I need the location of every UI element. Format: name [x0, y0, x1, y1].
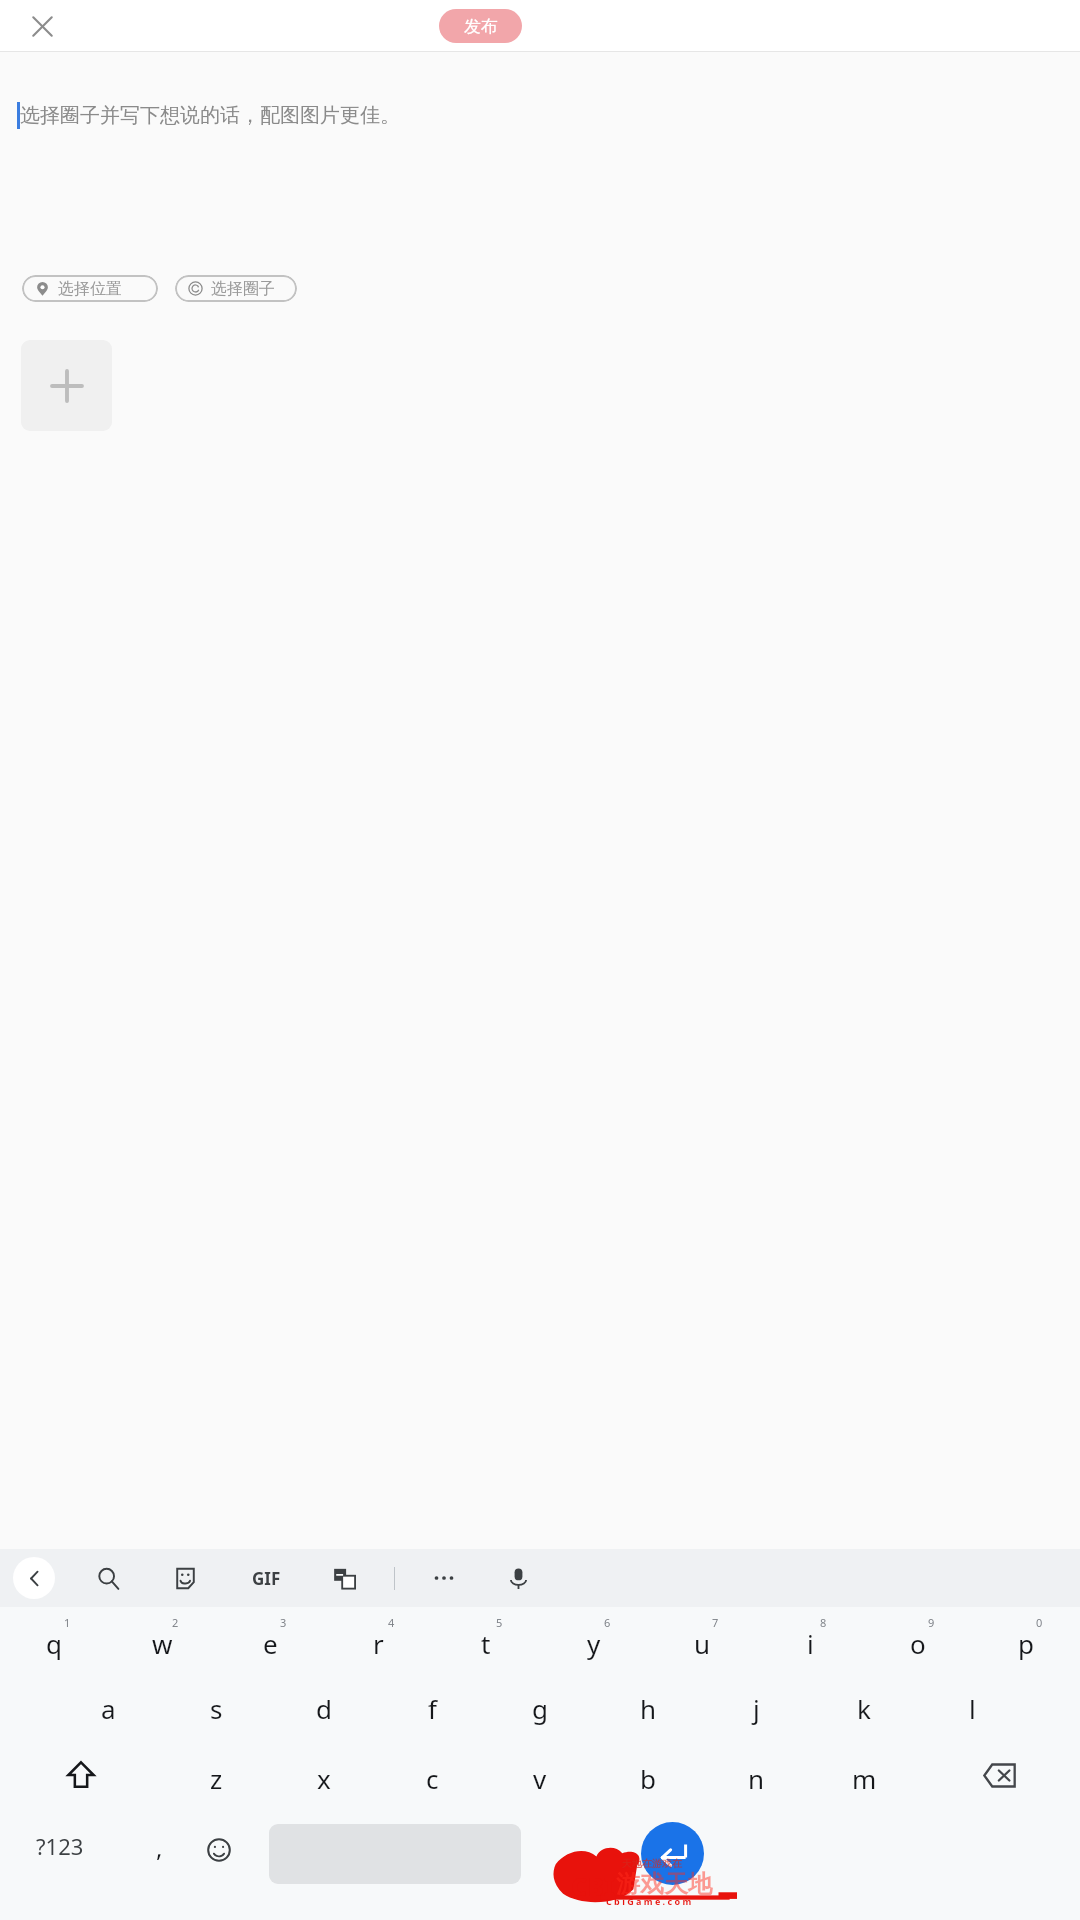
- staticText: 选择圈子: [211, 279, 275, 299]
- button[interactable]: Search: [86, 1556, 130, 1600]
- button[interactable]: f: [378, 1681, 486, 1751]
- staticText: e: [263, 1626, 278, 1661]
- button[interactable]: n: [702, 1751, 810, 1821]
- button[interactable]: ,: [124, 1821, 194, 1891]
- button[interactable]: 发布: [439, 9, 522, 43]
- staticText: 游戏天地: [616, 1869, 712, 1899]
- button[interactable]: Emoji: [196, 1827, 242, 1873]
- button[interactable]: m: [810, 1751, 918, 1821]
- button[interactable]: a: [54, 1681, 162, 1751]
- staticText: b: [640, 1761, 656, 1796]
- button[interactable]: More options: [421, 1555, 467, 1601]
- button[interactable]: h: [594, 1681, 702, 1751]
- button[interactable]: 8: [756, 1611, 864, 1681]
- button[interactable]: k: [810, 1681, 918, 1751]
- button[interactable]: x: [270, 1751, 378, 1821]
- button[interactable]: l: [918, 1681, 1026, 1751]
- button[interactable]: j: [702, 1681, 810, 1751]
- staticText: h: [640, 1691, 657, 1726]
- button[interactable]: Shift: [0, 1751, 162, 1821]
- staticText: v: [533, 1761, 547, 1796]
- staticText: o: [910, 1626, 926, 1661]
- staticText: m: [852, 1761, 877, 1796]
- staticText: z: [210, 1761, 223, 1796]
- button[interactable]: Translate: [322, 1556, 366, 1600]
- staticText: 0: [1036, 1615, 1043, 1630]
- button[interactable]: b: [594, 1751, 702, 1821]
- staticText: ?123: [36, 1831, 84, 1861]
- staticText: y: [587, 1626, 601, 1661]
- staticText: ,: [156, 1831, 163, 1864]
- button[interactable]: Close: [14, 0, 70, 52]
- staticText: 6: [604, 1615, 611, 1630]
- button[interactable]: 0: [972, 1611, 1080, 1681]
- staticText: 9: [928, 1615, 935, 1630]
- staticText: 7: [712, 1615, 719, 1630]
- staticText: a: [101, 1691, 116, 1726]
- staticText: 选择位置: [58, 279, 122, 299]
- staticText: n: [748, 1761, 765, 1796]
- staticText: 发布: [464, 16, 498, 37]
- button[interactable]: c: [378, 1751, 486, 1821]
- staticText: 8: [820, 1615, 827, 1630]
- staticText: s: [210, 1691, 223, 1726]
- button[interactable]: s: [162, 1681, 270, 1751]
- staticText: w: [152, 1626, 173, 1661]
- staticText: d: [316, 1691, 332, 1726]
- staticText: 3: [280, 1615, 287, 1630]
- button[interactable]: 1: [0, 1611, 108, 1681]
- button[interactable]: 6: [540, 1611, 648, 1681]
- staticText: x: [317, 1761, 331, 1796]
- staticText: u: [694, 1626, 711, 1661]
- button[interactable]: Back: [13, 1557, 55, 1599]
- button[interactable]: 3: [216, 1611, 324, 1681]
- button[interactable]: Add photo: [21, 340, 112, 431]
- staticText: l: [969, 1691, 976, 1726]
- staticText: 2: [172, 1615, 179, 1630]
- staticText: 1: [64, 1615, 71, 1630]
- button[interactable]: d: [270, 1681, 378, 1751]
- staticText: r: [373, 1626, 384, 1661]
- staticText: 选择圈子并写下想说的话，配图图片更佳。: [20, 103, 400, 128]
- staticText: 4: [388, 1615, 395, 1630]
- staticText: k: [857, 1691, 871, 1726]
- button[interactable]: Stickers: [163, 1556, 207, 1600]
- button[interactable]: Voice input: [496, 1556, 540, 1600]
- staticText: j: [753, 1691, 760, 1726]
- button[interactable]: v: [486, 1751, 594, 1821]
- button[interactable]: ?123: [5, 1821, 115, 1891]
- button[interactable]: z: [162, 1751, 270, 1821]
- staticText: f: [428, 1691, 437, 1726]
- staticText: 5: [496, 1615, 503, 1630]
- button[interactable]: 选择位置: [22, 275, 158, 302]
- button[interactable]: 5: [432, 1611, 540, 1681]
- button[interactable]: 4: [324, 1611, 432, 1681]
- staticText: 天地在游戏在: [622, 1857, 682, 1870]
- staticText: g: [532, 1691, 548, 1726]
- staticText: t: [481, 1626, 491, 1661]
- button[interactable]: 选择圈子: [175, 275, 297, 302]
- button[interactable]: 7: [648, 1611, 756, 1681]
- staticText: i: [807, 1626, 814, 1661]
- button[interactable]: Backspace: [918, 1751, 1080, 1821]
- button[interactable]: 2: [108, 1611, 216, 1681]
- button[interactable]: Enter: [641, 1822, 704, 1885]
- staticText: C b i G a m e . c o m: [606, 1895, 692, 1907]
- button[interactable]: g: [486, 1681, 594, 1751]
- staticText: CBI: [571, 1869, 616, 1903]
- staticText: q: [46, 1626, 62, 1661]
- button[interactable]: GIF: [240, 1552, 292, 1604]
- staticText: GIF: [252, 1567, 281, 1590]
- staticText: c: [426, 1761, 439, 1796]
- button[interactable]: 9: [864, 1611, 972, 1681]
- staticText: p: [1018, 1626, 1034, 1661]
